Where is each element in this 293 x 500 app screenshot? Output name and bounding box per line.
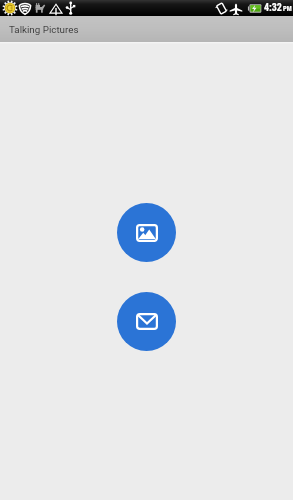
staticText: Talking Pictures [9, 24, 79, 35]
button[interactable]: Pictures [117, 203, 176, 262]
button[interactable]: Email [117, 292, 176, 351]
staticText: PM [283, 5, 292, 13]
staticText: 4:32 [264, 2, 282, 14]
